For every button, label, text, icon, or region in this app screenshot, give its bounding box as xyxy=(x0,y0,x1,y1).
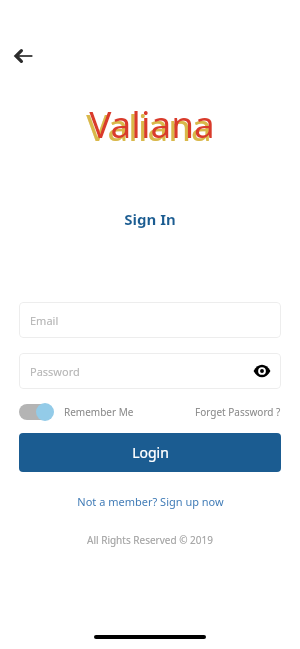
staticText: Valiana xyxy=(86,101,212,151)
staticText: Password xyxy=(30,364,80,379)
button[interactable]: Login xyxy=(19,433,281,472)
button[interactable]: Forget Password ? xyxy=(195,405,281,419)
button[interactable]: Show password xyxy=(249,358,275,384)
staticText: Valiana xyxy=(89,98,215,148)
button[interactable]: Password xyxy=(19,353,281,389)
staticText: Sign In xyxy=(124,209,176,229)
button[interactable]: Not a member? Sign up now xyxy=(71,492,230,511)
staticText: Not a member? Sign up now xyxy=(77,494,224,509)
staticText: Login xyxy=(132,443,169,462)
staticText: Forget Password ? xyxy=(195,405,281,419)
button[interactable]: Remember Me xyxy=(19,403,134,421)
staticText: Email xyxy=(30,313,59,328)
staticText: All Rights Reserved © 2019 xyxy=(87,533,213,547)
button[interactable]: Email xyxy=(19,302,281,338)
staticText: Remember Me xyxy=(64,405,134,419)
button[interactable]: Back xyxy=(10,42,38,70)
